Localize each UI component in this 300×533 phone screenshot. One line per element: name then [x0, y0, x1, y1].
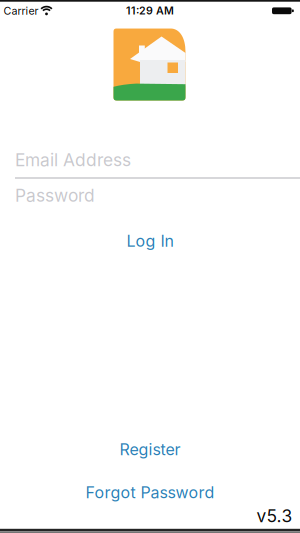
- staticText: Carrier: [3, 4, 38, 17]
- staticText: Log In: [126, 232, 173, 250]
- button[interactable]: Email Address: [0, 142, 300, 177]
- staticText: Email Address: [15, 150, 131, 170]
- staticText: Password: [15, 185, 95, 206]
- button[interactable]: Log In: [102, 224, 197, 258]
- staticText: Forgot Password: [85, 483, 214, 502]
- staticText: Register: [119, 440, 180, 459]
- button[interactable]: Forgot Password: [61, 475, 238, 510]
- button[interactable]: Password: [0, 178, 300, 213]
- staticText: v5.3: [256, 506, 292, 526]
- staticText: 11:29 AM: [126, 4, 174, 17]
- button[interactable]: Register: [95, 432, 204, 467]
